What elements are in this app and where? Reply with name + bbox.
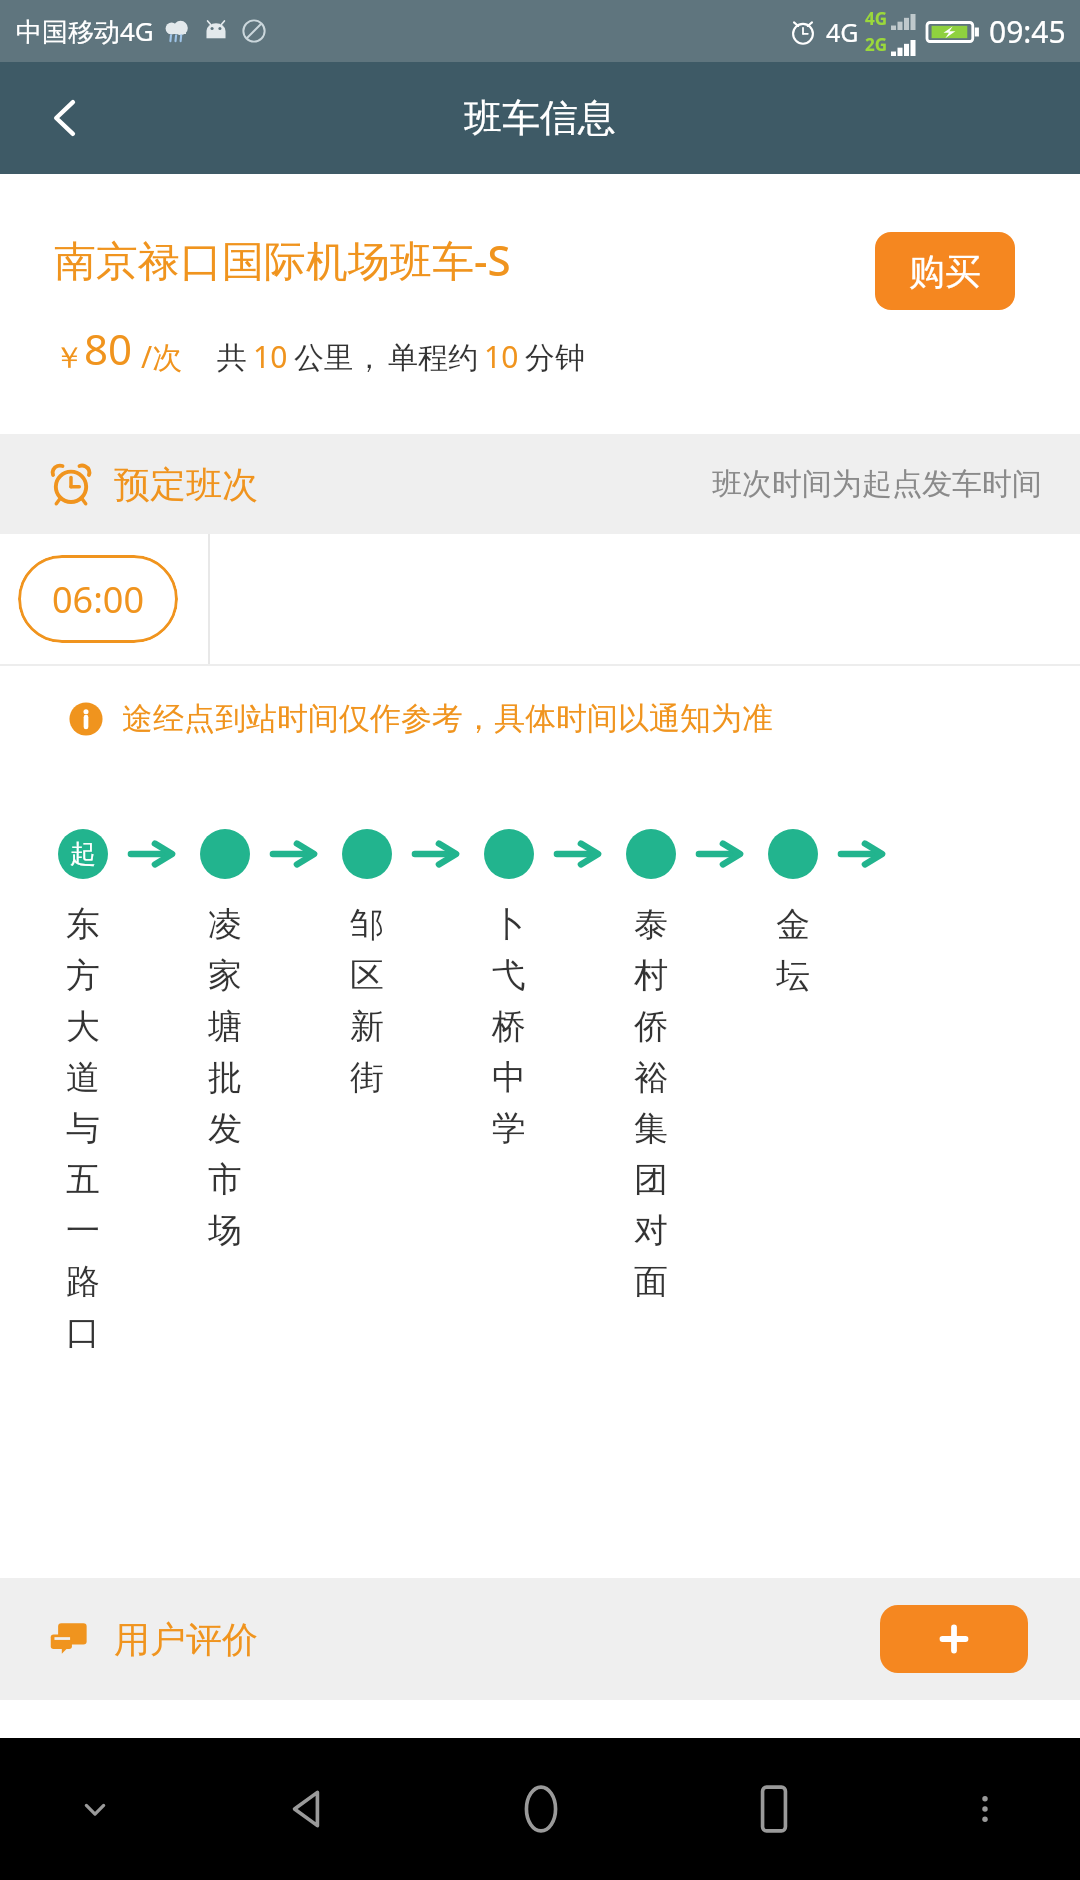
staticText: 家 [208,954,242,997]
staticText: 集 [634,1107,668,1150]
staticText: 塘 [208,1005,242,1048]
staticText: 发 [208,1107,242,1150]
staticText: 坛 [776,954,810,997]
staticText: 泰 [634,903,668,946]
button[interactable]: 06:00 [18,555,178,643]
staticText: 团 [634,1158,668,1201]
staticText: 邹 [350,903,384,946]
staticText: 09:45 [989,11,1066,52]
staticText: 4G [865,7,888,30]
staticText: 卜 [492,903,526,946]
staticText: 东 [66,903,100,946]
staticText: 途经点到站时间仅作参考，具体时间以通知为准 [122,699,773,738]
staticText: 路 [66,1260,100,1303]
staticText: 市 [208,1158,242,1201]
staticText: 面 [634,1260,668,1303]
staticText: 南京禄口国际机场班车-S [54,231,511,288]
button[interactable]: Recents [657,1738,890,1880]
staticText: 10 [484,336,519,377]
button[interactable]: Hide [0,1738,190,1880]
staticText: 大 [66,1005,100,1048]
staticText: 分钟 [525,339,585,377]
staticText: 10 [253,336,288,377]
staticText: 村 [634,954,668,997]
staticText: 班车信息 [464,94,616,142]
staticText: 起 [70,838,96,871]
button[interactable]: Back [0,62,130,174]
button[interactable]: More options [890,1738,1080,1880]
staticText: 侨 [634,1005,668,1048]
staticText: 金 [776,903,810,946]
staticText: 五 [66,1158,100,1201]
staticText: 弋 [492,954,526,997]
staticText: 单程约 [388,339,478,377]
staticText: 06:00 [52,575,145,624]
staticText: 80 [84,320,133,377]
staticText: 方 [66,954,100,997]
staticText: 批 [208,1056,242,1099]
staticText: 共 [217,339,247,377]
staticText: 购买 [909,249,981,294]
staticText: 口 [66,1311,100,1354]
staticText: /次 [141,336,183,377]
staticText: 对 [634,1209,668,1252]
staticText: 凌 [208,903,242,946]
button[interactable]: Back [190,1738,424,1880]
staticText: 裕 [634,1056,668,1099]
button[interactable]: Home [424,1738,657,1880]
staticText: 用户评价 [114,1617,258,1662]
staticText: ￥ [54,339,84,377]
staticText: 与 [66,1107,100,1150]
staticText: 4G [826,15,859,49]
staticText: 公里， [294,339,384,377]
staticText: 中 [492,1056,526,1099]
staticText: 桥 [492,1005,526,1048]
staticText: 预定班次 [114,462,258,507]
staticText: 一 [66,1209,100,1252]
staticText: 2G [865,33,888,56]
staticText: 场 [208,1209,242,1252]
staticText: 街 [350,1056,384,1099]
staticText: 班次时间为起点发车时间 [712,465,1042,503]
staticText: 学 [492,1107,526,1150]
staticText: 新 [350,1005,384,1048]
staticText: 中国移动4G [16,13,154,49]
button[interactable]: 购买 [875,232,1015,310]
button[interactable]: Add review [880,1605,1028,1673]
staticText: 区 [350,954,384,997]
staticText: 道 [66,1056,100,1099]
